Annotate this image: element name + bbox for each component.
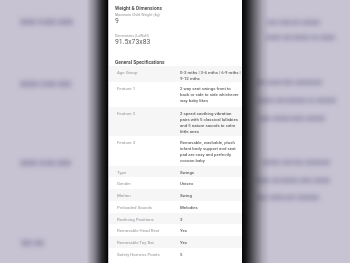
staticText: Motion — [117, 193, 180, 198]
button[interactable]: Preloaded Sounds — [109, 201, 242, 213]
button[interactable]: Reclining Positions — [109, 213, 242, 224]
staticText: Yes — [180, 240, 188, 245]
button[interactable]: Age Group — [109, 66, 242, 82]
staticText: Maximum Child Weight (kg) — [115, 13, 160, 17]
staticText: Weight & Dimensions — [115, 5, 162, 11]
staticText: Type — [117, 170, 180, 175]
staticText: Reclining Positions — [117, 217, 180, 222]
staticText: 3 — [180, 217, 183, 222]
staticText: Yes — [180, 228, 188, 233]
button[interactable]: Gender — [109, 177, 242, 189]
button[interactable]: Feature 2 — [109, 107, 242, 136]
staticText: Swings — [180, 170, 195, 175]
staticText: 0-3 mths | 3-6 mths | 6-9 mths | 9-12 mt… — [180, 70, 241, 80]
staticText: General Specifications — [115, 59, 165, 65]
button[interactable]: Removable Toy Bar — [109, 236, 242, 248]
button[interactable]: Feature 1 — [109, 82, 242, 107]
staticText: 91.5x73x83 — [115, 38, 151, 46]
staticText: Removable Head Rest — [117, 228, 180, 233]
button[interactable]: Removable Head Rest — [109, 224, 242, 236]
staticText: 2 speed soothing vibration pairs with 5 … — [180, 111, 241, 134]
staticText: Removable Toy Bar — [117, 240, 180, 245]
button[interactable]: Feature 3 — [109, 136, 242, 166]
staticText: Unisex — [180, 181, 194, 186]
staticText: Removable, washable, plush infant body s… — [180, 140, 241, 163]
staticText: Feature 2 — [117, 111, 180, 116]
button[interactable]: Safety Harness Points — [109, 248, 242, 260]
staticText: Swing — [180, 193, 192, 198]
staticText: Preloaded Sounds — [117, 205, 180, 210]
staticText: 5 — [180, 252, 183, 257]
button[interactable]: Motion — [109, 189, 242, 201]
staticText: Age Group — [117, 70, 180, 75]
staticText: Dimensions (LxWxH) — [115, 34, 149, 38]
staticText: Feature 1 — [117, 86, 180, 91]
staticText: Safety Harness Points — [117, 252, 180, 257]
staticText: 9 — [115, 17, 119, 25]
staticText: 2 way seat swings front to back or side … — [180, 86, 241, 103]
button[interactable]: Type — [109, 166, 242, 177]
staticText: Melodies — [180, 205, 198, 210]
staticText: Feature 3 — [117, 140, 180, 145]
staticText: Gender — [117, 181, 180, 186]
